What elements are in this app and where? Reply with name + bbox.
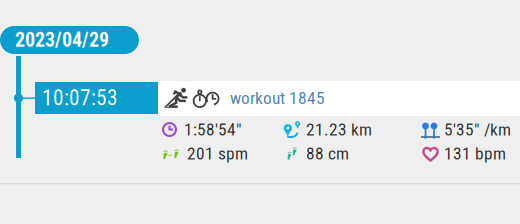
button[interactable]: 2023/04/29 — [0, 26, 139, 54]
button[interactable]: workout 1845 — [164, 86, 354, 110]
staticText: 88 cm — [306, 143, 349, 164]
staticText: 131 bpm — [444, 143, 506, 164]
staticText: 201 spm — [187, 143, 248, 164]
staticText: 10:07:53 — [42, 85, 118, 110]
staticText: 5'35" /km — [444, 119, 511, 140]
button[interactable]: 10:07:53 — [35, 82, 158, 114]
staticText: 2023/04/29 — [15, 28, 109, 52]
staticText: 1:58'54" — [184, 119, 242, 140]
staticText: workout 1845 — [230, 88, 325, 108]
staticText: 21.23 km — [306, 119, 372, 140]
